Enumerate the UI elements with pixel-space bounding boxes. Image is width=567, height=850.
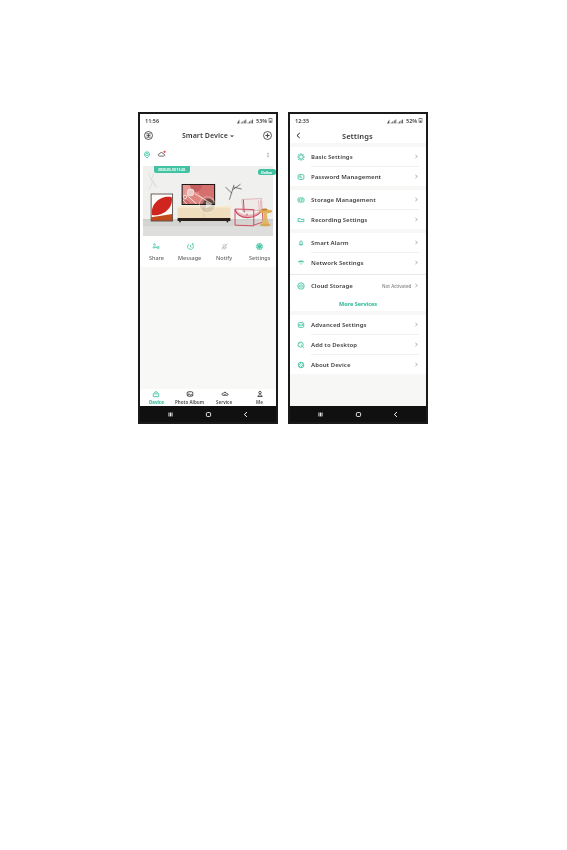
button[interactable]: Back: [390, 409, 401, 420]
staticText: Device: [149, 399, 164, 405]
button[interactable]: Back: [240, 409, 251, 420]
button[interactable]: Basic Settings: [289, 147, 427, 166]
staticText: Notify: [216, 254, 233, 261]
staticText: Advanced Settings: [311, 321, 367, 329]
button[interactable]: More Services: [289, 295, 427, 311]
button[interactable]: Scan code: [143, 130, 154, 141]
button[interactable]: Storage Management: [289, 190, 427, 209]
staticText: 12:35: [295, 117, 310, 124]
button[interactable]: Home: [203, 409, 214, 420]
staticText: Settings: [342, 131, 373, 141]
staticText: Network Settings: [311, 259, 364, 267]
staticText: More Services: [339, 300, 378, 307]
button[interactable]: Add device: [262, 130, 273, 141]
staticText: About Device: [311, 361, 351, 369]
button[interactable]: Add to Desktop: [289, 335, 427, 354]
button[interactable]: Back: [293, 130, 304, 141]
button[interactable]: Recording Settings: [289, 210, 427, 229]
button[interactable]: Advanced Settings: [289, 315, 427, 334]
staticText: Photo Album: [175, 399, 205, 405]
staticText: Online: [261, 170, 273, 175]
staticText: 53%: [256, 117, 268, 124]
button[interactable]: Photo Album: [173, 389, 207, 406]
button[interactable]: Recent apps: [315, 409, 326, 420]
button[interactable]: Service: [207, 389, 242, 406]
button[interactable]: Message: [173, 236, 207, 267]
staticText: Settings: [249, 254, 271, 261]
button[interactable]: Settings: [242, 236, 277, 267]
button[interactable]: Smart Alarm: [289, 233, 427, 252]
staticText: Storage Management: [311, 196, 376, 204]
button[interactable]: Password Management: [289, 167, 427, 186]
button[interactable]: Notify: [207, 236, 242, 267]
staticText: 11:56: [145, 117, 160, 124]
staticText: Smart Device: [182, 131, 228, 141]
staticText: Cloud Storage: [311, 282, 353, 290]
button[interactable]: Recent apps: [165, 409, 176, 420]
staticText: Not Activated: [382, 283, 412, 289]
button[interactable]: Home: [353, 409, 364, 420]
staticText: Me: [256, 399, 263, 405]
button[interactable]: Device: [139, 389, 173, 406]
button[interactable]: Network Settings: [289, 253, 427, 272]
staticText: Password Management: [311, 173, 382, 181]
button[interactable]: Smart Device: [182, 131, 234, 141]
button[interactable]: About Device: [289, 355, 427, 374]
staticText: 52%: [406, 117, 418, 124]
staticText: Share: [149, 254, 164, 261]
staticText: Message: [178, 254, 202, 261]
staticText: 2023-01-10 11:22: [158, 167, 186, 172]
button[interactable]: More options: [264, 151, 272, 159]
staticText: Recording Settings: [311, 216, 368, 224]
button[interactable]: Share: [139, 236, 173, 267]
button[interactable]: Cloud Storage: [289, 276, 427, 295]
staticText: Service: [216, 399, 233, 405]
staticText: Basic Settings: [311, 153, 353, 161]
staticText: Smart Alarm: [311, 239, 349, 247]
button[interactable]: Me: [242, 389, 277, 406]
staticText: Add to Desktop: [311, 341, 358, 349]
